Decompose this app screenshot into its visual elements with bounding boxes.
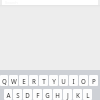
staticText: E bbox=[22, 77, 26, 85]
staticText: W bbox=[11, 77, 17, 85]
button[interactable]: J bbox=[63, 89, 72, 100]
staticText: J bbox=[67, 91, 69, 99]
staticText: F bbox=[36, 91, 40, 99]
staticText: P bbox=[92, 77, 96, 85]
button[interactable]: T bbox=[39, 75, 48, 86]
staticText: L bbox=[86, 91, 90, 99]
staticText: K bbox=[76, 91, 80, 99]
button[interactable]: I bbox=[69, 75, 78, 86]
button[interactable]: G bbox=[43, 89, 52, 100]
button[interactable]: U bbox=[59, 75, 68, 86]
button[interactable]: K bbox=[73, 89, 82, 100]
button[interactable]: D bbox=[23, 89, 32, 100]
staticText: R bbox=[32, 77, 36, 85]
staticText: A bbox=[6, 91, 11, 99]
staticText: H bbox=[55, 91, 60, 99]
staticText: D bbox=[25, 91, 30, 99]
button[interactable]: Q bbox=[0, 75, 8, 86]
staticText: U bbox=[61, 77, 66, 85]
button[interactable]: S bbox=[13, 89, 22, 100]
button[interactable]: E bbox=[19, 75, 28, 86]
staticText: Y bbox=[52, 77, 56, 85]
staticText: G bbox=[45, 91, 50, 99]
button[interactable]: L bbox=[83, 89, 92, 100]
staticText: S bbox=[16, 91, 20, 99]
button[interactable]: F bbox=[33, 89, 42, 100]
button[interactable]: R bbox=[29, 75, 38, 86]
staticText: I bbox=[72, 77, 75, 85]
button[interactable]: Y bbox=[49, 75, 58, 86]
button[interactable]: W bbox=[9, 75, 18, 86]
button[interactable]: A bbox=[4, 89, 12, 100]
staticText: T bbox=[42, 77, 46, 85]
button[interactable]: H bbox=[53, 89, 62, 100]
button[interactable]: P bbox=[89, 75, 98, 86]
button[interactable]: O bbox=[79, 75, 88, 86]
staticText: O bbox=[81, 77, 86, 85]
staticText: Q bbox=[2, 77, 7, 85]
